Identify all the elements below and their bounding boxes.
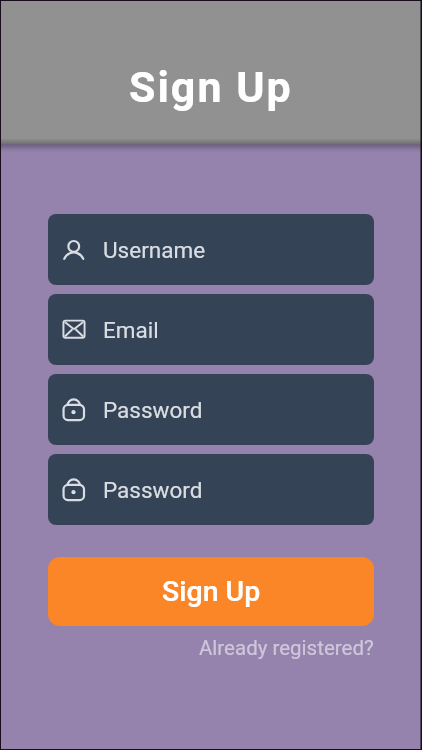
button[interactable]: Password [48,374,374,445]
staticText: Sign Up [162,575,261,608]
other: Password [63,399,85,421]
staticText: Email [103,317,159,343]
button[interactable]: Email [48,294,374,365]
button[interactable]: Sign Up [48,557,374,626]
staticText: Username [103,237,206,263]
other: Email [63,319,85,341]
button[interactable]: Already registered? [199,636,374,660]
staticText: Password [103,397,203,423]
other: Username [63,239,85,261]
staticText: Password [103,477,203,503]
button[interactable]: Username [48,214,374,285]
other: Confirm password [63,479,85,501]
staticText: Sign Up [129,62,293,112]
button[interactable]: Confirm password [48,454,374,525]
